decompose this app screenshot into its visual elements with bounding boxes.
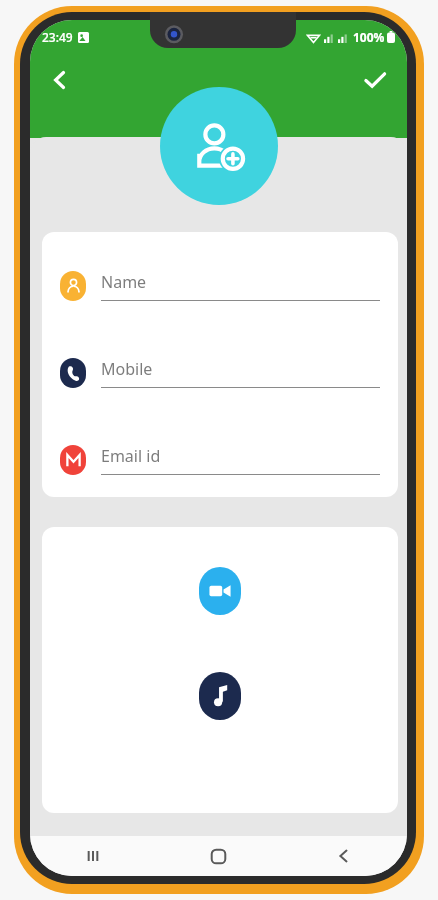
button[interactable]: Email id	[42, 432, 398, 488]
staticText: 100%	[353, 29, 385, 45]
staticText: Name	[101, 271, 147, 293]
button[interactable]: Video call	[199, 567, 241, 615]
button[interactable]: Mobile	[42, 345, 398, 401]
button[interactable]: Name	[42, 258, 398, 314]
staticText: Email id	[101, 445, 161, 467]
staticText: 23:49	[42, 29, 73, 45]
button[interactable]: Ringtone	[199, 672, 241, 720]
button[interactable]: Back	[281, 836, 407, 876]
button[interactable]: Back	[38, 58, 82, 102]
button[interactable]: Recent apps	[30, 836, 155, 876]
button[interactable]: Save contact	[353, 58, 397, 102]
staticText: Mobile	[101, 358, 153, 380]
button[interactable]: Add contact photo	[160, 87, 278, 205]
button[interactable]: Home	[155, 836, 281, 876]
